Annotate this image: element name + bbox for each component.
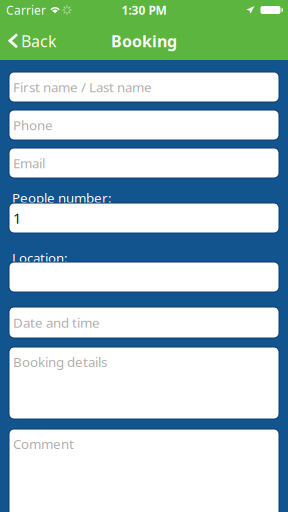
staticText: People number: [12, 189, 112, 207]
button[interactable] [9, 262, 279, 292]
staticText: First name / Last name [13, 78, 152, 96]
button[interactable]: Phone [9, 110, 279, 140]
button[interactable]: Booking details [9, 347, 279, 419]
staticText: 1:30 PM [121, 2, 166, 18]
staticText: Carrier [6, 2, 46, 18]
button[interactable]: Comment [9, 429, 279, 512]
button[interactable]: First name / Last name [9, 72, 279, 102]
staticText: 1 [13, 208, 21, 228]
staticText: Comment [13, 435, 74, 453]
staticText: Date and time [13, 314, 100, 331]
staticText: Email [13, 154, 45, 172]
staticText: Booking [111, 30, 177, 52]
staticText: Location: [12, 249, 68, 267]
button[interactable]: Email [9, 148, 279, 178]
staticText: Phone [13, 116, 53, 134]
button[interactable]: 1 [9, 203, 279, 233]
staticText: Booking details [13, 353, 107, 371]
button[interactable]: Date and time [9, 307, 279, 338]
button[interactable]: Back [0, 21, 65, 59]
staticText: Back [21, 30, 57, 52]
